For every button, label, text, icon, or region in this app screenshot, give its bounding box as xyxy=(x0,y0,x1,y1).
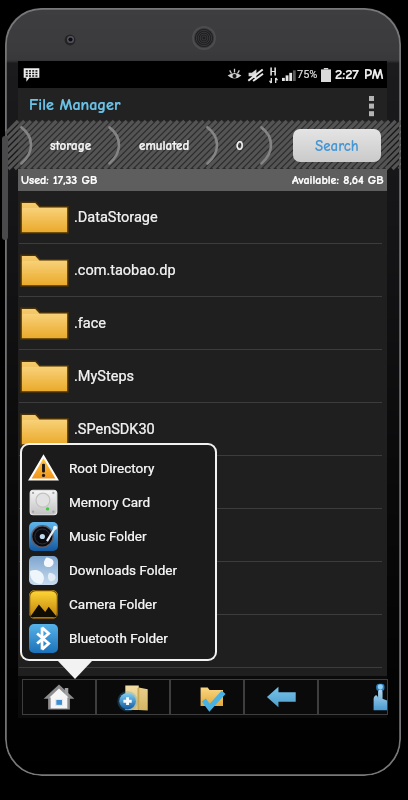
button[interactable]: Back xyxy=(244,679,318,715)
button[interactable]: Alarms xyxy=(18,615,387,667)
button[interactable]: Downloads Folder xyxy=(22,553,215,587)
staticText: H xyxy=(270,67,277,78)
staticText: Downloads Folder xyxy=(69,562,178,578)
staticText: 0 xyxy=(236,138,244,153)
button[interactable]: .MySteps xyxy=(18,350,387,402)
staticText: .com.taobao.dp xyxy=(74,262,176,279)
button[interactable]: storage xyxy=(35,138,107,153)
button[interactable]: .com.taobao.dp xyxy=(18,244,387,296)
button[interactable]: 0 xyxy=(221,138,259,153)
staticText: emulated xyxy=(139,138,190,153)
button[interactable]: More options xyxy=(355,88,387,121)
button[interactable]: Root Directory xyxy=(22,451,215,485)
button[interactable]: Select all xyxy=(170,679,244,715)
button[interactable]: emulated xyxy=(123,138,205,153)
staticText: .scloud xyxy=(74,527,121,544)
staticText: .SPenSDK30 xyxy=(74,421,155,438)
button[interactable]: .SPenSDK30 xyxy=(18,403,387,455)
button[interactable]: Multi select xyxy=(318,679,388,715)
button[interactable]: Camera Folder xyxy=(22,587,215,621)
staticText: File Manager xyxy=(29,96,121,114)
staticText: Search xyxy=(315,137,359,154)
staticText: Alarms xyxy=(74,633,120,650)
button[interactable]: Home xyxy=(22,679,96,715)
staticText: .face xyxy=(74,315,107,332)
button[interactable]: New folder xyxy=(96,679,170,715)
button[interactable]: Bluetooth Folder xyxy=(22,621,215,655)
staticText: Camera Folder xyxy=(69,596,157,612)
staticText: Bluetooth Folder xyxy=(69,630,168,646)
staticText: .MySteps xyxy=(74,368,135,385)
staticText: storage xyxy=(50,138,92,153)
staticText: .quickthemeshop xyxy=(74,474,186,491)
button[interactable]: .DataStorage xyxy=(18,191,387,243)
button[interactable]: .quickthemeshop xyxy=(18,456,387,508)
staticText: 75% xyxy=(297,68,318,81)
button[interactable]: Music Folder xyxy=(22,519,215,553)
button[interactable]: Search xyxy=(293,129,381,162)
button[interactable]: Memory Card xyxy=(22,485,215,519)
staticText: 2:27 PM xyxy=(335,66,384,83)
staticText: .DataStorage xyxy=(74,209,158,226)
staticText: Available: 8,64 GB xyxy=(292,173,384,187)
staticText: Root Directory xyxy=(69,460,155,476)
staticText: Used: 17,33 GB xyxy=(21,173,98,187)
button[interactable]: .face xyxy=(18,297,387,349)
button[interactable]: .scloud xyxy=(18,509,387,561)
staticText: Music Folder xyxy=(69,528,147,544)
staticText: Memory Card xyxy=(69,494,151,510)
button[interactable]: .thumbnails xyxy=(18,562,387,614)
